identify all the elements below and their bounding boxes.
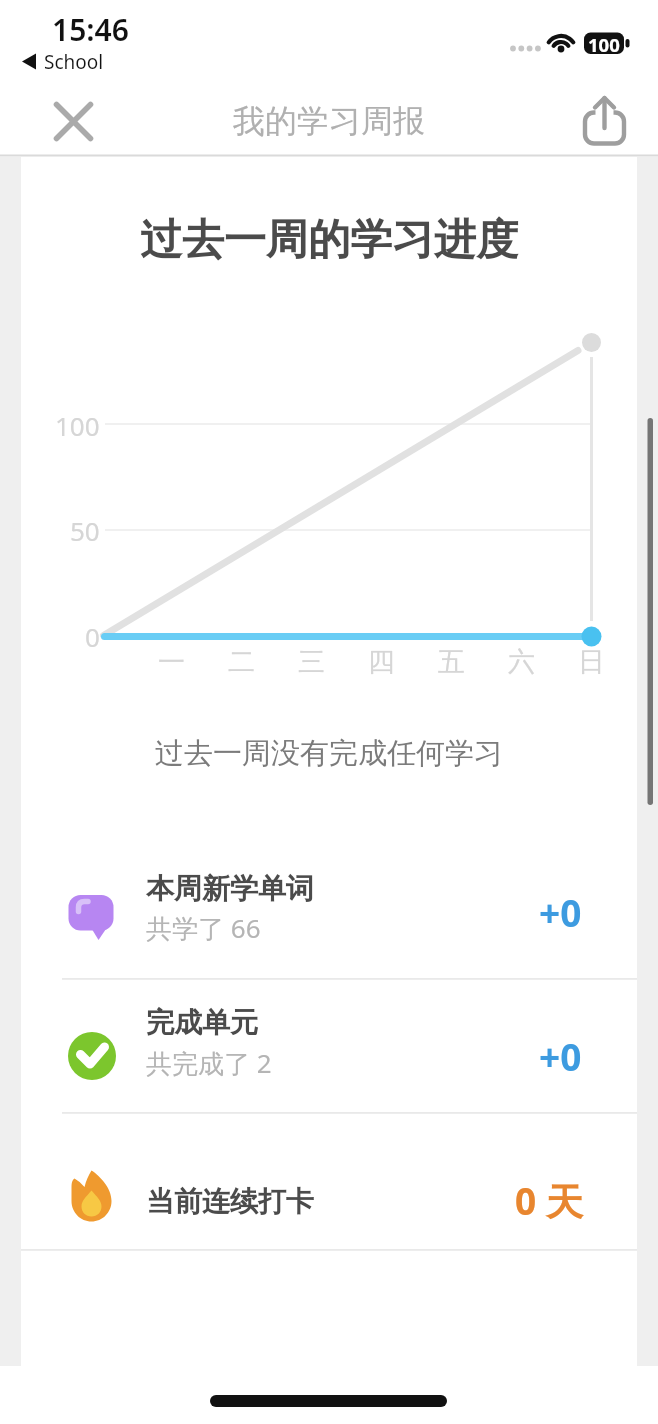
- staticText: 过去一周的学习进度: [140, 214, 518, 267]
- staticText: 四: [368, 645, 395, 679]
- staticText: 三: [298, 645, 325, 679]
- staticText: 共学了 66: [146, 910, 261, 946]
- staticText: 日: [578, 645, 605, 679]
- button[interactable]: [21, 850, 637, 979]
- staticText: 100: [588, 32, 620, 57]
- staticText: 当前连续打卡: [146, 1184, 314, 1219]
- staticText: 0: [85, 619, 100, 654]
- staticText: School: [44, 49, 104, 75]
- staticText: 15:46: [52, 9, 129, 50]
- staticText: 六: [508, 645, 535, 679]
- button[interactable]: [40, 88, 106, 154]
- staticText: 0 天: [515, 1175, 583, 1226]
- staticText: 本周新学单词: [146, 871, 314, 906]
- staticText: 二: [228, 645, 255, 679]
- staticText: 一: [158, 645, 185, 679]
- staticText: 我的学习周报: [233, 101, 425, 141]
- staticText: 完成单元: [146, 1005, 258, 1040]
- staticText: 50: [70, 513, 100, 548]
- staticText: 过去一周没有完成任何学习: [155, 735, 503, 772]
- button[interactable]: [21, 1130, 637, 1249]
- staticText: 100: [55, 408, 100, 443]
- staticText: 五: [438, 645, 465, 679]
- staticText: 共完成了 2: [146, 1045, 272, 1081]
- staticText: +0: [539, 1031, 582, 1081]
- button[interactable]: [21, 980, 637, 1112]
- staticText: +0: [539, 887, 582, 937]
- button[interactable]: [570, 88, 640, 158]
